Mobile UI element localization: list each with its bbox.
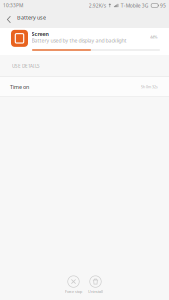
staticText: Screen	[31, 30, 48, 37]
staticText: Battery use	[17, 14, 46, 21]
button[interactable]: Back	[1, 11, 17, 28]
staticText: 5h 0m 32s	[141, 85, 158, 89]
staticText: Time on	[10, 83, 29, 91]
staticText: 10:33PM	[3, 2, 23, 9]
button[interactable]: Force stop	[65, 276, 82, 294]
button[interactable]: Time on	[0, 77, 169, 97]
staticText: 2.92K/s	[89, 2, 106, 9]
button[interactable]: Uninstall	[88, 276, 103, 294]
staticText: T-Mobile 3G	[121, 2, 149, 9]
staticText: 95	[160, 2, 166, 9]
staticText: Force stop	[65, 289, 82, 294]
staticText: Uninstall	[88, 289, 103, 294]
staticText: Battery used by the display and backligh…	[31, 37, 126, 44]
staticText: USE DETAILS	[12, 63, 40, 69]
staticText: 44%	[150, 34, 158, 40]
